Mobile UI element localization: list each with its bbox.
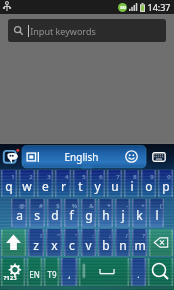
staticText: ' <box>75 232 77 240</box>
staticText: e <box>42 178 49 194</box>
button[interactable]: T9 <box>44 258 59 286</box>
button[interactable]: s <box>29 199 45 227</box>
button[interactable]: k <box>132 199 147 227</box>
staticText: x <box>51 237 58 253</box>
staticText: r <box>61 178 66 194</box>
button[interactable]: x <box>46 229 62 256</box>
button[interactable]: l <box>149 199 164 227</box>
staticText: T9 <box>47 269 57 280</box>
button[interactable]: Backspace <box>149 229 173 256</box>
button[interactable]: Keyboard settings <box>143 144 174 169</box>
staticText: t <box>78 178 83 194</box>
button[interactable]: u <box>107 170 122 197</box>
staticText: Input keywords <box>30 25 96 37</box>
button[interactable]: English <box>44 144 119 169</box>
button[interactable]: Stickers <box>0 144 22 169</box>
button[interactable]: EN <box>27 258 42 286</box>
staticText: " <box>57 232 60 240</box>
button[interactable]: Symbols and settings <box>1 258 25 286</box>
button[interactable]: Input keywords <box>8 19 166 42</box>
button[interactable]: p <box>158 170 173 197</box>
staticText: o <box>145 178 153 194</box>
button[interactable]: t <box>73 170 88 197</box>
staticText: p <box>162 178 170 194</box>
button[interactable]: Search <box>148 258 173 286</box>
staticText: b <box>102 237 110 253</box>
staticText: so <box>120 4 126 11</box>
staticText: ?123 <box>3 274 17 282</box>
button[interactable]: a <box>11 199 27 227</box>
staticText: - <box>126 202 128 210</box>
staticText: ; <box>109 232 111 240</box>
button[interactable]: o <box>141 170 156 197</box>
staticText: m <box>134 237 146 253</box>
button[interactable]: c <box>64 229 79 256</box>
staticText: 1 <box>11 173 15 181</box>
staticText: 9 <box>150 173 154 181</box>
staticText: # <box>39 202 43 210</box>
button[interactable]: n <box>115 229 130 256</box>
button[interactable]: . <box>131 258 146 286</box>
staticText: i <box>130 178 134 194</box>
button[interactable]: d <box>47 199 62 227</box>
staticText: @ <box>19 202 25 210</box>
staticText: / <box>125 232 128 240</box>
button[interactable]: Space <box>79 258 129 286</box>
button[interactable]: i <box>124 170 139 197</box>
button[interactable]: , <box>61 258 77 286</box>
staticText: z <box>33 237 39 253</box>
button[interactable]: m <box>132 229 147 256</box>
button[interactable]: r <box>55 170 71 197</box>
button[interactable]: f <box>64 199 79 227</box>
staticText: f <box>69 207 74 223</box>
staticText: q <box>5 178 13 194</box>
staticText: 2 <box>29 173 33 181</box>
staticText: ! <box>40 232 42 240</box>
button[interactable]: e <box>37 170 53 197</box>
button[interactable]: z <box>28 229 44 256</box>
staticText: , <box>68 268 71 280</box>
staticText: 3 <box>47 173 51 181</box>
staticText: ? <box>142 232 145 240</box>
staticText: j <box>121 207 125 223</box>
button[interactable]: b <box>98 229 113 256</box>
staticText: & <box>89 202 94 210</box>
button[interactable]: w <box>19 170 35 197</box>
staticText: ( <box>160 202 162 210</box>
button[interactable]: v <box>81 229 96 256</box>
staticText: * <box>107 202 111 210</box>
staticText: w <box>22 178 32 194</box>
button[interactable]: Shift <box>1 229 26 256</box>
button[interactable]: Resize keyboard <box>22 144 44 169</box>
staticText: + <box>141 202 145 210</box>
staticText: English <box>64 150 99 164</box>
staticText: s <box>34 207 40 223</box>
staticText: g <box>85 207 93 223</box>
staticText: v <box>85 237 92 253</box>
staticText: % <box>72 202 77 210</box>
button[interactable]: y <box>90 170 105 197</box>
staticText: a <box>16 207 23 223</box>
staticText: 0 <box>167 173 171 181</box>
staticText: 7 <box>116 173 120 181</box>
staticText: c <box>69 237 75 253</box>
staticText: . <box>137 268 140 280</box>
staticText: 8 <box>133 173 137 181</box>
staticText: 4 <box>65 173 69 181</box>
staticText: h <box>102 207 110 223</box>
button[interactable]: g <box>81 199 96 227</box>
staticText: y <box>94 178 101 194</box>
staticText: 14:37 <box>147 1 171 13</box>
staticText: : <box>92 232 94 240</box>
staticText: k <box>136 207 143 223</box>
staticText: u <box>111 178 119 194</box>
button[interactable]: Emoji <box>119 144 143 169</box>
staticText: 5 <box>82 173 86 181</box>
staticText: EN <box>29 269 40 280</box>
button[interactable]: q <box>1 170 17 197</box>
staticText: 6 <box>99 173 103 181</box>
staticText: l <box>155 207 159 223</box>
button[interactable]: j <box>115 199 130 227</box>
staticText: d <box>51 207 59 223</box>
button[interactable]: h <box>98 199 113 227</box>
